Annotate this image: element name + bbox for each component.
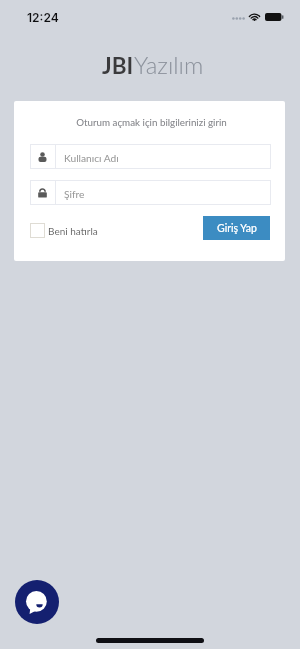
staticText: Beni hatırla xyxy=(48,225,98,237)
button[interactable]: Şifre xyxy=(30,180,271,205)
staticText: JBI xyxy=(102,52,134,79)
staticText: Kullanıcı Adı xyxy=(64,152,119,164)
button[interactable]: Chat xyxy=(15,580,59,624)
button[interactable]: Kullanıcı Adı xyxy=(30,144,271,169)
button[interactable]: Beni hatırla xyxy=(30,223,98,238)
staticText: Yazılım xyxy=(134,50,204,79)
staticText: Oturum açmak için bilgilerinizi girin xyxy=(16,116,285,128)
button[interactable]: Giriş Yap xyxy=(203,216,270,240)
staticText: Şifre xyxy=(64,188,85,200)
staticText: Giriş Yap xyxy=(217,222,257,235)
staticText: 12:24 xyxy=(27,10,59,25)
